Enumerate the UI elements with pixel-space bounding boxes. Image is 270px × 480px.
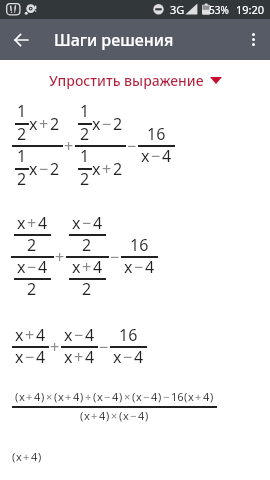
- staticText: 4: [145, 256, 155, 278]
- staticText: 2: [17, 168, 27, 190]
- staticText: ): [145, 408, 149, 423]
- staticText: −: [104, 389, 111, 404]
- staticText: −: [130, 408, 137, 423]
- staticText: ): [210, 389, 214, 404]
- staticText: 2: [82, 278, 92, 300]
- staticText: x: [15, 324, 24, 346]
- staticText: 4: [203, 389, 210, 404]
- staticText: x: [58, 389, 64, 404]
- staticText: 4: [31, 449, 38, 464]
- staticText: 2: [80, 123, 90, 145]
- staticText: x: [124, 256, 133, 278]
- staticText: x: [64, 346, 73, 368]
- staticText: 2: [113, 113, 123, 135]
- staticText: +: [27, 212, 37, 234]
- staticText: 4: [93, 212, 103, 234]
- staticText: 16: [171, 389, 184, 404]
- staticText: 2: [17, 123, 27, 145]
- staticText: −: [74, 324, 84, 346]
- staticText: 16: [119, 324, 138, 346]
- button[interactable]: Упростить выражение: [43, 68, 228, 93]
- staticText: 4: [73, 389, 80, 404]
- staticText: +: [50, 336, 60, 358]
- staticText: +: [195, 389, 202, 404]
- staticText: x: [64, 324, 73, 346]
- staticText: x: [141, 145, 150, 167]
- staticText: x: [16, 449, 22, 464]
- staticText: 2: [80, 168, 90, 190]
- staticText: x: [17, 212, 26, 234]
- staticText: −: [82, 212, 92, 234]
- staticText: 4: [38, 256, 48, 278]
- staticText: x: [92, 113, 101, 135]
- staticText: −: [151, 145, 161, 167]
- staticText: 2: [27, 278, 37, 300]
- staticText: x: [113, 346, 122, 368]
- staticText: (: [12, 449, 16, 464]
- staticText: −: [134, 256, 144, 278]
- staticText: 16: [130, 234, 149, 256]
- staticText: 4: [151, 389, 158, 404]
- staticText: ): [119, 389, 123, 404]
- staticText: ): [106, 408, 110, 423]
- staticText: 16: [147, 123, 166, 145]
- staticText: +: [39, 113, 49, 135]
- staticText: x: [123, 408, 129, 423]
- staticText: −: [102, 113, 112, 135]
- staticText: +: [64, 135, 74, 157]
- staticText: 4: [93, 256, 103, 278]
- staticText: +: [65, 389, 72, 404]
- staticText: ): [158, 389, 162, 404]
- staticText: 19:20: [236, 2, 265, 17]
- staticText: −: [39, 158, 49, 180]
- staticText: (: [93, 389, 97, 404]
- staticText: ×: [124, 389, 131, 404]
- staticText: (: [184, 389, 188, 404]
- staticText: Упростить выражение: [49, 71, 204, 90]
- staticText: 2: [27, 234, 37, 256]
- staticText: +: [85, 389, 92, 404]
- staticText: +: [74, 346, 84, 368]
- staticText: 2: [50, 158, 60, 180]
- staticText: +: [25, 324, 35, 346]
- staticText: 4: [34, 389, 41, 404]
- staticText: 1: [17, 100, 27, 122]
- staticText: +: [102, 158, 112, 180]
- staticText: x: [84, 408, 90, 423]
- staticText: 2: [113, 158, 123, 180]
- staticText: x: [15, 346, 24, 368]
- staticText: −: [99, 336, 109, 358]
- staticText: 1: [80, 100, 90, 122]
- staticText: (: [54, 389, 58, 404]
- staticText: ): [38, 449, 42, 464]
- staticText: x: [17, 256, 26, 278]
- staticText: 4: [138, 408, 145, 423]
- staticText: 4: [36, 324, 46, 346]
- staticText: x: [19, 389, 25, 404]
- staticText: (: [80, 408, 84, 423]
- staticText: x: [29, 113, 38, 135]
- staticText: −: [25, 346, 35, 368]
- staticText: x: [29, 158, 38, 180]
- staticText: x: [188, 389, 194, 404]
- staticText: x: [92, 158, 101, 180]
- staticText: −: [27, 256, 37, 278]
- staticText: −: [163, 389, 170, 404]
- staticText: Шаги решения: [54, 29, 174, 51]
- staticText: ×: [46, 389, 53, 404]
- staticText: 4: [36, 346, 46, 368]
- button[interactable]: Back: [0, 19, 42, 60]
- staticText: x: [97, 389, 103, 404]
- staticText: 1: [17, 145, 27, 167]
- staticText: +: [26, 389, 33, 404]
- staticText: +: [23, 449, 30, 464]
- staticText: x: [72, 256, 81, 278]
- staticText: (: [119, 408, 123, 423]
- staticText: 4: [99, 408, 106, 423]
- staticText: +: [82, 256, 92, 278]
- button[interactable]: More options: [237, 19, 270, 60]
- staticText: 2: [50, 113, 60, 135]
- staticText: 3G: [170, 2, 185, 17]
- staticText: 2: [82, 234, 92, 256]
- staticText: −: [143, 389, 150, 404]
